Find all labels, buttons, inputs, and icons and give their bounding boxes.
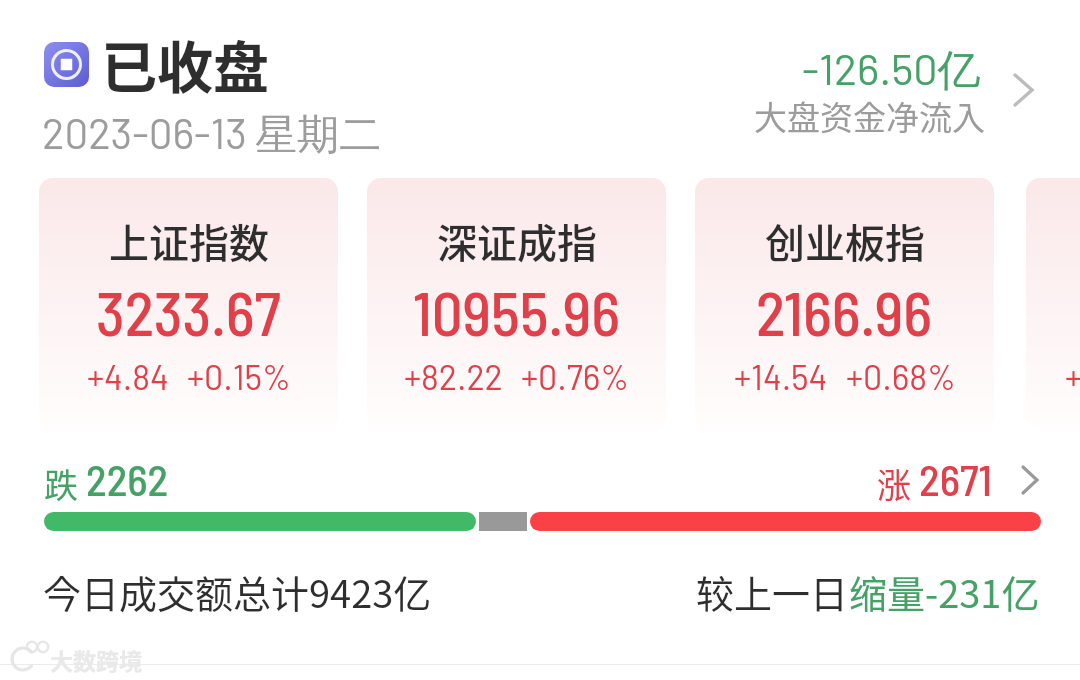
staticText: 2023-06-13 星期二 [42, 107, 382, 161]
staticText: 跌 [44, 459, 78, 508]
staticText: 深证成指 [437, 212, 597, 270]
staticText: 3233.67 [96, 275, 281, 348]
staticText: +82.22 [404, 356, 503, 397]
staticText: +0.15% [187, 356, 291, 397]
staticText: 2166.96 [756, 275, 933, 348]
button[interactable]: Market status [44, 42, 89, 87]
staticText: +0.68% [846, 356, 956, 397]
staticText: +14.54 [734, 356, 828, 397]
staticText: 2671 [919, 453, 992, 505]
staticText: 已收盘 [101, 23, 269, 104]
staticText: -126.50亿 [802, 42, 981, 98]
staticText: +114.18 [1065, 356, 1080, 397]
button[interactable]: -126.50亿 [730, 30, 995, 150]
staticText: 2262 [86, 453, 169, 505]
staticText: 较上一日 [696, 564, 849, 619]
staticText: 10955.96 [413, 275, 621, 348]
button[interactable]: 涨 [877, 450, 1041, 510]
staticText: 涨 [877, 459, 911, 508]
staticText: 大数跨境 [50, 643, 142, 676]
button[interactable]: 深证成指 [367, 178, 666, 429]
button[interactable]: View capital flow [1006, 70, 1046, 110]
staticText: 创业板指 [765, 212, 925, 270]
button[interactable]: 北证50 [1026, 178, 1080, 429]
staticText: 缩量-231亿 [849, 564, 1040, 619]
staticText: 大盘资金净流入 [754, 92, 985, 140]
button[interactable]: 跌 [44, 450, 184, 510]
button[interactable]: 上证指数 [39, 178, 338, 429]
staticText: +0.76% [521, 356, 630, 397]
staticText: +4.84 [87, 356, 169, 397]
button[interactable]: 创业板指 [695, 178, 994, 429]
staticText: 上证指数 [109, 212, 269, 270]
staticText: 今日成交额总计9423亿 [43, 564, 432, 619]
